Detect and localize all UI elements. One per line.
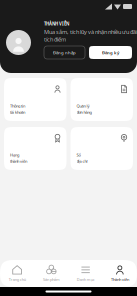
staticText: Trang chủ xyxy=(9,277,26,282)
staticText: Sổ xyxy=(76,152,80,157)
button[interactable]: Thành viên xyxy=(103,260,137,287)
staticText: thành viên xyxy=(10,159,27,164)
button[interactable]: Thông tin xyxy=(4,78,66,121)
button[interactable]: Đăng nhập xyxy=(44,46,85,59)
staticText: Thông tin xyxy=(10,103,25,108)
staticText: Hạng xyxy=(10,152,19,157)
staticText: Sản phẩm xyxy=(43,277,60,282)
staticText: Đăng ký xyxy=(102,50,119,55)
staticText: địa chỉ xyxy=(76,159,87,164)
button[interactable]: Danh mục xyxy=(68,260,103,287)
staticText: Đăng nhập xyxy=(53,50,76,55)
button[interactable]: Đăng ký xyxy=(89,46,132,59)
staticText: THÀNH VIÊN xyxy=(44,21,69,27)
button[interactable]: Sản phẩm xyxy=(34,260,68,287)
staticText: Quản lý xyxy=(76,103,89,108)
staticText: Thành viên xyxy=(111,277,129,282)
button[interactable]: Quản lý xyxy=(70,78,133,121)
staticText: đơn hàng xyxy=(76,110,91,115)
staticText: tài khoản xyxy=(10,110,25,115)
staticText: Mua sắm, tích lũy và nhận nhiều ưu đãi t… xyxy=(44,28,137,43)
button[interactable]: Trang chủ xyxy=(0,260,34,287)
button[interactable]: Sổ xyxy=(70,127,133,170)
button[interactable]: Hạng xyxy=(4,127,66,170)
staticText: Danh mục xyxy=(77,277,95,282)
